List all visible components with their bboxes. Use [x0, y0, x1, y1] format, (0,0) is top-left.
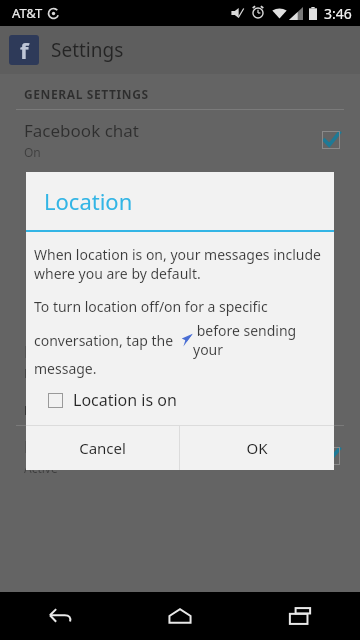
button[interactable]: Location is on: [26, 387, 334, 413]
staticText: Location: [44, 186, 133, 216]
button[interactable]: Recent apps: [240, 592, 360, 640]
staticText: To turn location off/on for a specific: [34, 297, 268, 316]
staticText: conversation, tap the: [34, 331, 177, 350]
staticText: 3:46: [324, 4, 352, 23]
button[interactable]: Facebook chat: [0, 110, 360, 169]
staticText: before sending your: [193, 321, 328, 359]
staticText: f: [20, 35, 29, 65]
staticText: Active: [24, 460, 58, 476]
staticText: Facebook chat: [24, 119, 139, 142]
staticText: NOTIFICATION SETTINGS: [24, 402, 185, 418]
staticText: Settings: [51, 37, 124, 63]
staticText: message.: [34, 359, 97, 378]
button[interactable]: Cancel: [26, 426, 179, 470]
staticText: Device Language: [24, 365, 121, 381]
button[interactable]: Notifications: [0, 426, 360, 485]
button[interactable]: Toggle Notifications: [322, 447, 340, 465]
button[interactable]: Home: [120, 592, 240, 640]
staticText: Language: [24, 340, 104, 363]
staticText: On: [24, 144, 41, 160]
staticText: AT&T: [12, 4, 43, 22]
staticText: Cancel: [79, 438, 126, 458]
staticText: Notifications: [24, 435, 126, 458]
staticText: OK: [246, 438, 268, 458]
staticText: GENERAL SETTINGS: [24, 86, 149, 102]
button[interactable]: Language: [0, 331, 360, 390]
staticText: Location is on: [73, 389, 177, 411]
button[interactable]: Toggle Facebook chat: [322, 131, 340, 149]
button[interactable]: OK: [180, 426, 334, 470]
button[interactable]: Back: [0, 592, 120, 640]
staticText: When location is on, your messages inclu…: [34, 245, 324, 283]
